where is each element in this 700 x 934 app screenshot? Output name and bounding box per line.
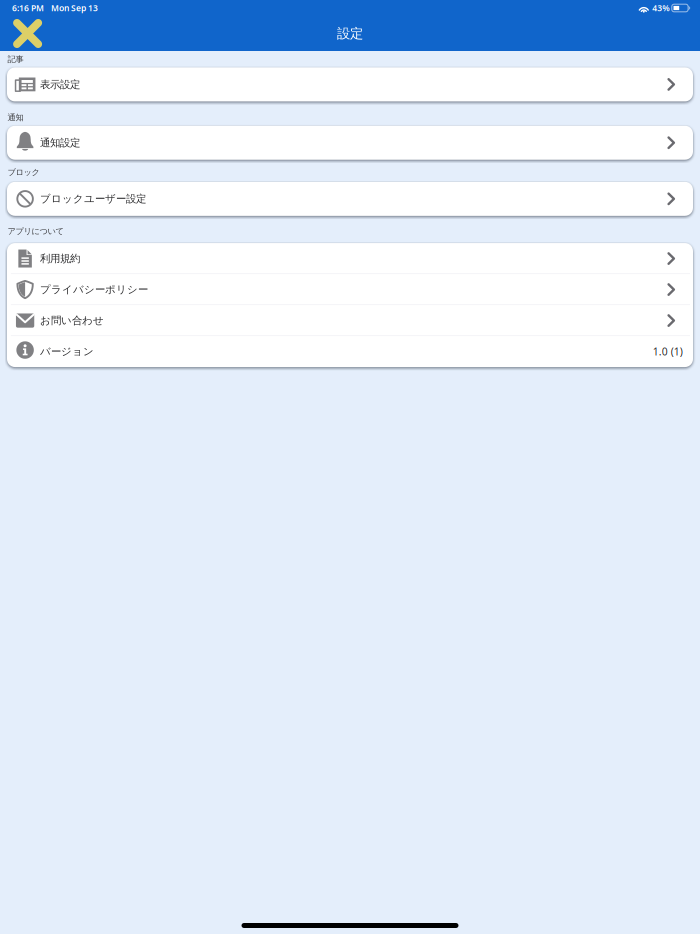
button[interactable]: お問い合わせ (7, 305, 693, 336)
staticText: 43% (652, 2, 669, 14)
button[interactable]: 表示設定 (7, 67, 693, 101)
staticText: 利用規約 (40, 252, 80, 265)
staticText: 6:16 PM (12, 2, 44, 14)
staticText: お問い合わせ (40, 314, 104, 327)
button[interactable]: ブロックユーザー設定 (7, 182, 693, 216)
staticText: バージョン (40, 345, 94, 358)
staticText: ブロックユーザー設定 (40, 192, 146, 205)
button[interactable]: Close (0, 19, 48, 48)
staticText: Mon Sep 13 (51, 2, 98, 14)
button[interactable]: バージョン (7, 336, 693, 367)
staticText: 表示設定 (40, 78, 80, 91)
staticText: 通知設定 (40, 136, 80, 149)
staticText: アプリについて (7, 226, 63, 236)
staticText: 設定 (337, 25, 363, 42)
button[interactable]: 利用規約 (7, 243, 693, 274)
button[interactable]: 通知設定 (7, 126, 693, 160)
staticText: ブロック (7, 167, 39, 177)
button[interactable]: プライバシーポリシー (7, 274, 693, 305)
staticText: プライバシーポリシー (40, 283, 148, 296)
staticText: 記事 (7, 54, 23, 64)
staticText: 1.0 (1) (653, 344, 683, 359)
staticText: 通知 (7, 112, 23, 123)
